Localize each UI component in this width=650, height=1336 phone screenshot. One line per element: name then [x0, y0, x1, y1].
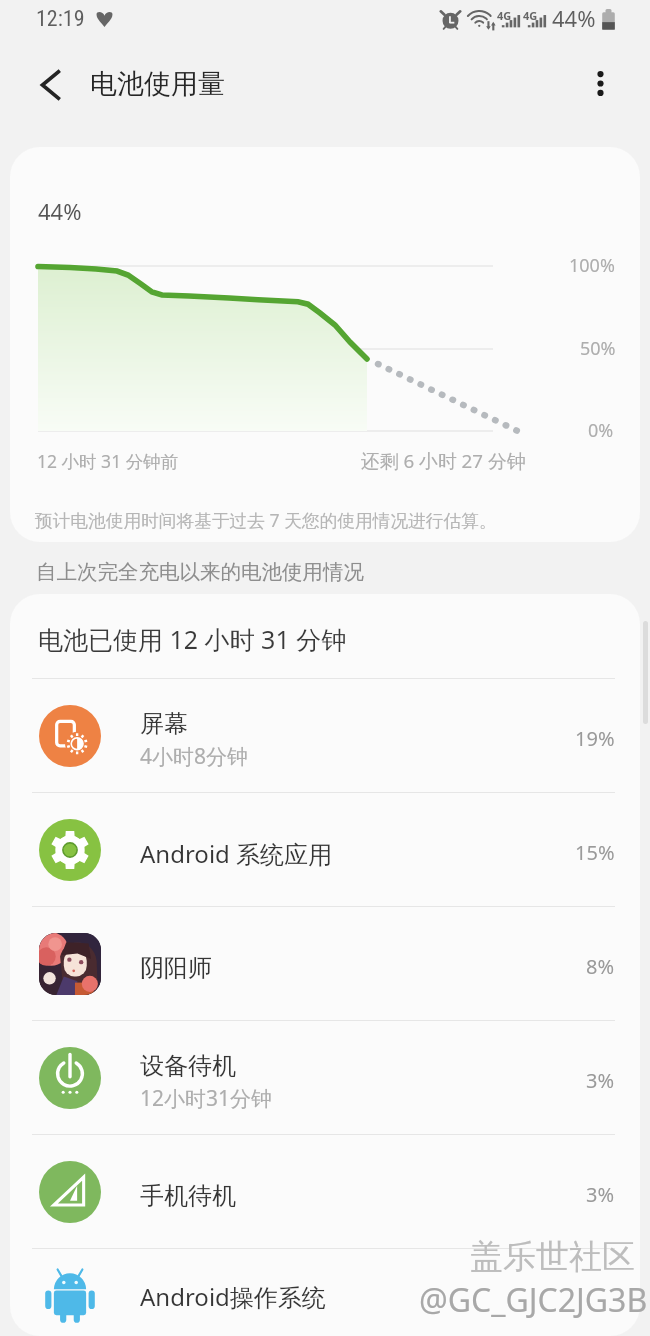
button[interactable]: 设备待机	[10, 1021, 640, 1134]
staticText: 19%	[575, 725, 615, 752]
button[interactable]: Android 系统应用	[10, 793, 640, 906]
staticText: 电池使用量	[90, 67, 225, 101]
staticText: 4G	[497, 8, 512, 23]
staticText: 0%	[588, 418, 614, 443]
staticText: 50%	[580, 336, 616, 361]
staticText: 屏幕	[140, 709, 188, 739]
staticText: 预计电池使用时间将基于过去 7 天您的使用情况进行估算。	[35, 508, 497, 532]
staticText: 12 小时 31 分钟前	[37, 449, 179, 473]
staticText: 自上次完全充电以来的电池使用情况	[36, 559, 364, 585]
staticText: 8%	[586, 953, 615, 980]
button[interactable]: Android操作系统	[10, 1249, 640, 1336]
staticText: Android 系统应用	[140, 837, 333, 870]
staticText: 阴阳师	[140, 953, 212, 983]
staticText: 4小时8分钟	[140, 742, 249, 771]
staticText: 盖乐世社区	[470, 1236, 635, 1278]
staticText: @GC_GJC2JG3B	[419, 1278, 648, 1322]
staticText: 15%	[575, 839, 615, 866]
staticText: 电池已使用 12 小时 31 分钟	[38, 622, 347, 656]
staticText: 100%	[569, 253, 615, 278]
button[interactable]: 阴阳师	[10, 907, 640, 1020]
staticText: 设备待机	[140, 1051, 236, 1081]
staticText: 还剩 6 小时 27 分钟	[361, 448, 526, 474]
button[interactable]: 屏幕	[10, 679, 640, 792]
staticText: 44%	[38, 196, 82, 226]
staticText: 3%	[586, 1181, 615, 1208]
staticText: 手机待机	[140, 1181, 236, 1211]
button[interactable]: Back	[22, 57, 78, 113]
staticText: 4G	[523, 8, 538, 23]
button[interactable]: More options	[572, 55, 628, 111]
staticText: 44%	[552, 3, 596, 33]
button[interactable]: 手机待机	[10, 1135, 640, 1248]
staticText: 12小时31分钟	[140, 1084, 273, 1113]
staticText: 3%	[586, 1067, 615, 1094]
staticText: 12:19	[36, 6, 85, 32]
staticText: Android操作系统	[140, 1280, 326, 1313]
